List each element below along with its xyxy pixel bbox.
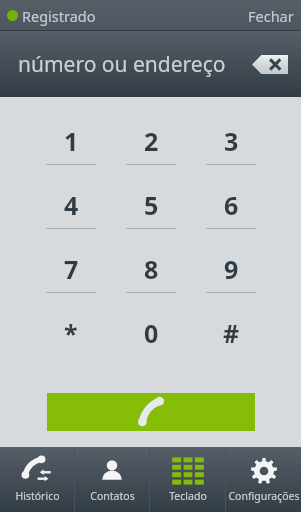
button[interactable]: Histórico <box>0 447 74 512</box>
button[interactable]: 8 <box>111 249 191 313</box>
staticText: 2 <box>144 124 159 158</box>
button[interactable]: Backspace <box>252 55 288 74</box>
button[interactable]: Contatos <box>75 447 149 512</box>
staticText: 9 <box>224 252 239 286</box>
button[interactable]: 0 <box>111 313 191 377</box>
staticText: Histórico <box>15 489 60 503</box>
staticText: 7 <box>64 252 79 286</box>
button[interactable]: Call <box>47 393 255 431</box>
staticText: 3 <box>224 124 239 158</box>
staticText: Fechar <box>248 6 294 26</box>
staticText: 6 <box>224 188 239 222</box>
button[interactable]: 4 <box>31 185 111 249</box>
staticText: Teclado <box>169 489 207 503</box>
button[interactable]: Teclado <box>150 447 225 512</box>
button[interactable]: número ou endereço <box>0 31 301 97</box>
staticText: * <box>64 316 78 350</box>
staticText: # <box>223 316 240 350</box>
button[interactable]: * <box>31 313 111 377</box>
staticText: 4 <box>64 188 79 222</box>
button[interactable]: # <box>191 313 271 377</box>
staticText: número ou endereço <box>18 50 226 79</box>
staticText: Registrado <box>22 6 96 26</box>
staticText: 1 <box>64 124 79 158</box>
staticText: 8 <box>144 252 159 286</box>
staticText: 5 <box>144 188 159 222</box>
button[interactable]: 5 <box>111 185 191 249</box>
staticText: Contatos <box>90 489 135 503</box>
staticText: Configurações <box>228 489 300 503</box>
button[interactable]: 3 <box>191 121 271 185</box>
button[interactable]: 7 <box>31 249 111 313</box>
button[interactable]: Registrado <box>0 0 106 31</box>
staticText: 0 <box>144 316 159 350</box>
button[interactable]: 9 <box>191 249 271 313</box>
button[interactable]: 6 <box>191 185 271 249</box>
button[interactable]: 1 <box>31 121 111 185</box>
button[interactable]: Configurações <box>226 447 301 512</box>
button[interactable]: 2 <box>111 121 191 185</box>
button[interactable]: Fechar <box>238 0 301 31</box>
